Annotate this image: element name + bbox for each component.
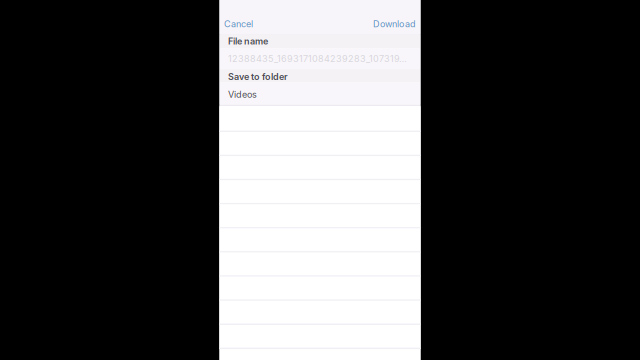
- staticText: Cancel: [224, 18, 253, 29]
- staticText: Save to folder: [228, 71, 288, 82]
- button[interactable]: Cancel: [219, 14, 279, 34]
- button[interactable]: Videos: [219, 82, 420, 106]
- button[interactable]: [219, 106, 420, 132]
- button[interactable]: [219, 204, 420, 228]
- button[interactable]: [219, 228, 420, 253]
- staticText: Download: [373, 18, 416, 29]
- button[interactable]: [219, 301, 420, 325]
- button[interactable]: 12388435_1693171084239283_107319…: [219, 48, 420, 69]
- staticText: File name: [228, 36, 268, 47]
- button[interactable]: [219, 132, 420, 156]
- button[interactable]: [219, 156, 420, 180]
- staticText: Videos: [228, 89, 257, 100]
- button[interactable]: [219, 180, 420, 204]
- staticText: 12388435_1693171084239283_107319…: [228, 53, 407, 64]
- button[interactable]: Download: [350, 14, 420, 34]
- button[interactable]: [219, 277, 420, 301]
- button[interactable]: [219, 325, 420, 349]
